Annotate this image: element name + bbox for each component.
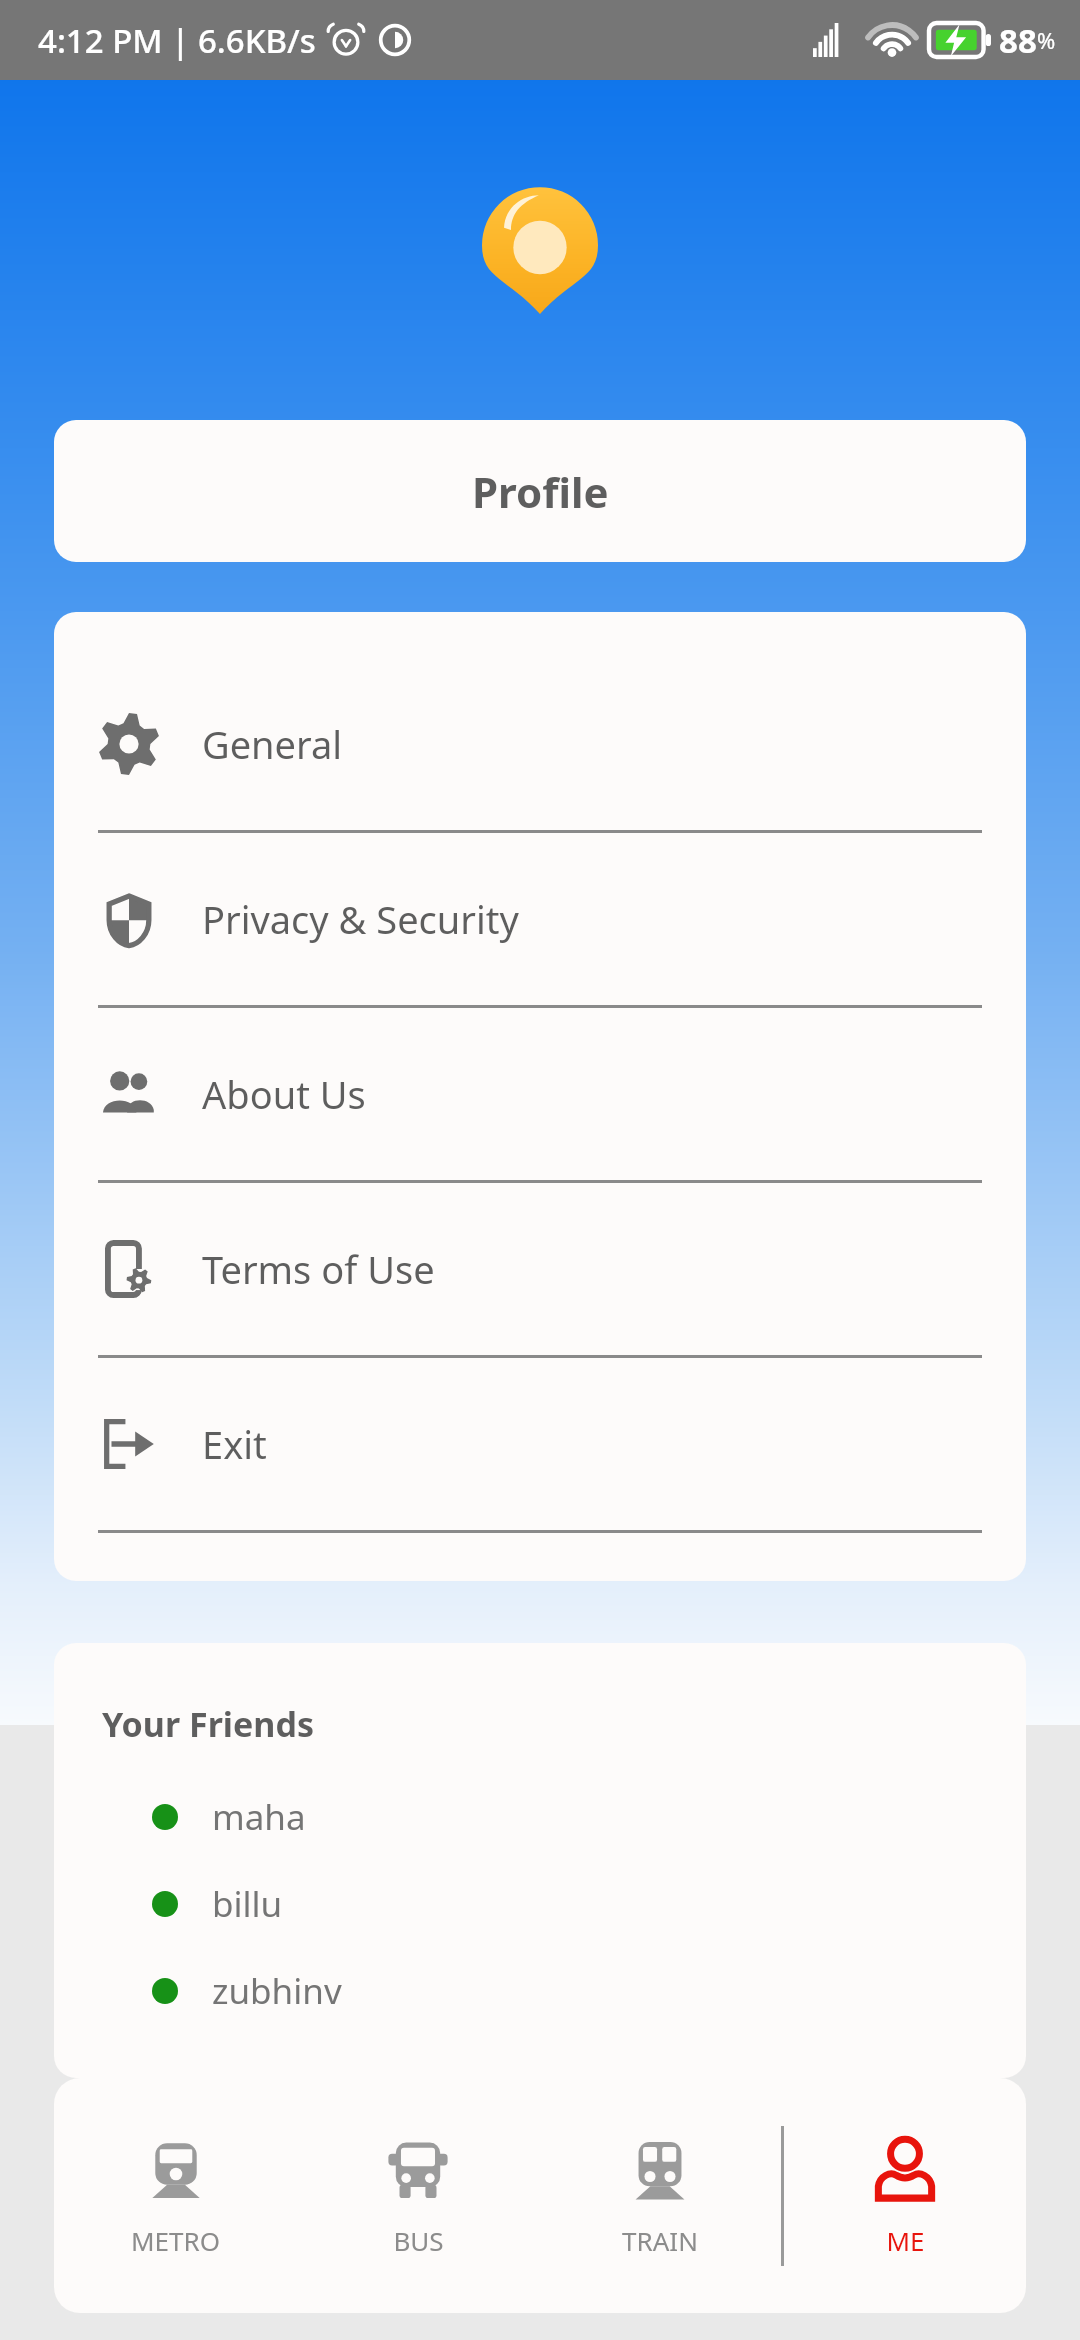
button[interactable]: TRAIN [539, 2078, 781, 2313]
staticText: 4:12 PM | 6.6KB/s [38, 18, 316, 63]
staticText: % [1037, 25, 1056, 55]
staticText: Profile [472, 463, 609, 520]
staticText: About Us [202, 1068, 366, 1120]
staticText: Exit [202, 1418, 267, 1470]
staticText: METRO [131, 2223, 220, 2258]
staticText: TRAIN [622, 2223, 698, 2258]
button[interactable]: General [54, 658, 1026, 833]
button[interactable]: ME [784, 2078, 1026, 2313]
button[interactable]: zubhinv [54, 1947, 1026, 2034]
button[interactable]: maha [54, 1773, 1026, 1860]
staticText: 88 [999, 18, 1037, 63]
staticText: billu [212, 1880, 283, 1928]
button[interactable]: Terms of Use [54, 1183, 1026, 1358]
button[interactable]: BUS [297, 2078, 539, 2313]
button[interactable]: About Us [54, 1008, 1026, 1183]
button[interactable]: billu [54, 1860, 1026, 1947]
button[interactable]: Privacy & Security [54, 833, 1026, 1008]
staticText: Terms of Use [202, 1243, 435, 1295]
staticText: BUS [393, 2223, 444, 2258]
button[interactable]: Profile [54, 420, 1026, 562]
staticText: maha [212, 1793, 306, 1841]
button[interactable]: METRO [54, 2078, 297, 2313]
staticText: General [202, 718, 343, 770]
button[interactable]: Exit [54, 1358, 1026, 1533]
staticText: Your Friends [102, 1701, 314, 1747]
staticText: zubhinv [212, 1967, 342, 2015]
staticText: Privacy & Security [202, 893, 519, 945]
staticText: ME [886, 2223, 925, 2258]
